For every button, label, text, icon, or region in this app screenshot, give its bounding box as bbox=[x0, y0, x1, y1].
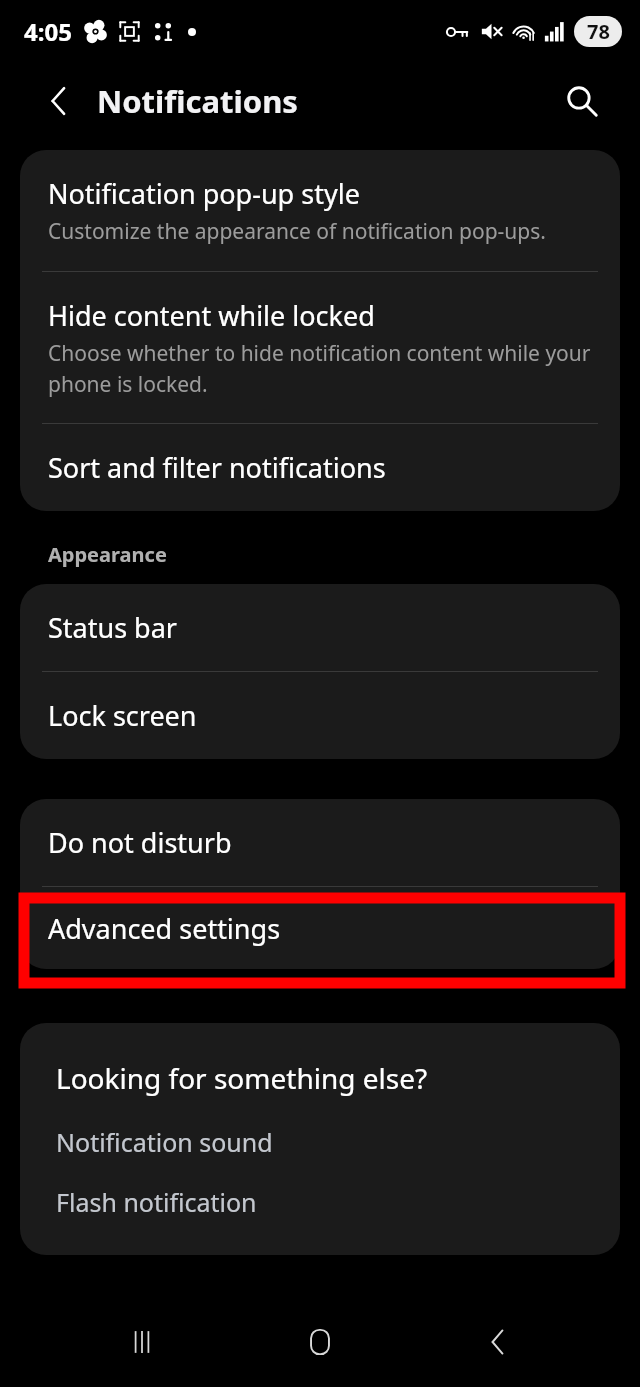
button[interactable]: Flash notification bbox=[56, 1185, 596, 1219]
staticText: 78 bbox=[587, 18, 610, 45]
staticText: Notifications bbox=[97, 80, 298, 122]
button[interactable]: Hide content while locked bbox=[20, 272, 620, 423]
button[interactable]: Notification pop-up style bbox=[20, 150, 620, 271]
staticText: Choose whether to hide notification cont… bbox=[48, 339, 592, 398]
button[interactable]: Status bar bbox=[20, 584, 620, 671]
button[interactable]: Recent apps bbox=[106, 1306, 178, 1378]
staticText: Appearance bbox=[48, 541, 167, 568]
button[interactable]: Sort and filter notifications bbox=[20, 424, 620, 511]
button[interactable]: Back bbox=[462, 1306, 534, 1378]
button[interactable]: Notification sound bbox=[56, 1125, 596, 1159]
staticText: Advanced settings bbox=[48, 910, 281, 947]
staticText: Hide content while locked bbox=[48, 297, 375, 334]
staticText: 4:05 bbox=[24, 15, 72, 48]
staticText: Lock screen bbox=[48, 697, 197, 734]
button[interactable]: Lock screen bbox=[20, 672, 620, 759]
button[interactable]: Back bbox=[32, 74, 86, 128]
staticText: Customize the appearance of notification… bbox=[48, 217, 546, 246]
staticText: Flash notification bbox=[56, 1185, 257, 1219]
staticText: Do not disturb bbox=[48, 824, 232, 861]
button[interactable]: Do not disturb bbox=[20, 799, 620, 886]
staticText: Notification sound bbox=[56, 1125, 273, 1159]
staticText: Looking for something else? bbox=[56, 1059, 428, 1097]
staticText: Sort and filter notifications bbox=[48, 449, 386, 486]
staticText: Notification pop-up style bbox=[48, 175, 360, 212]
button[interactable]: Home bbox=[284, 1306, 356, 1378]
button[interactable]: Search bbox=[554, 73, 610, 129]
staticText: Status bar bbox=[48, 609, 178, 646]
button[interactable]: Advanced settings bbox=[20, 887, 620, 969]
